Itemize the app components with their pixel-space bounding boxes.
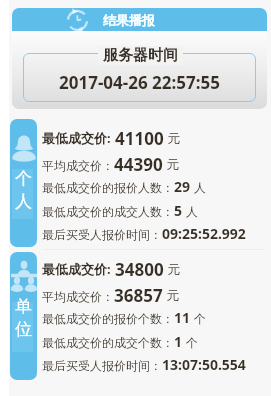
staticText: 13:07:50.554 xyxy=(162,355,246,373)
staticText: 人 xyxy=(183,203,199,219)
staticText: 元 xyxy=(163,286,180,304)
staticText: 元 xyxy=(163,155,180,173)
staticText: 最后买受人报价时间： xyxy=(42,358,162,373)
button[interactable]: 单位 xyxy=(10,252,37,380)
staticText: 单 xyxy=(15,296,32,317)
staticText: 位 xyxy=(15,319,32,340)
staticText: 1 xyxy=(174,332,183,350)
staticText: 最低成交价的成交人数： xyxy=(42,204,174,219)
staticText: 平均成交价： xyxy=(42,158,114,173)
staticText: 人 xyxy=(15,191,32,212)
button[interactable]: 结果播报 xyxy=(12,8,267,31)
staticText: 44390 xyxy=(114,153,163,173)
staticText: 最低成交价的报价人数： xyxy=(42,180,174,195)
staticText: 最低成交价: xyxy=(42,129,115,147)
staticText: 29 xyxy=(174,177,191,195)
staticText: 平均成交价： xyxy=(42,289,114,304)
staticText: 41100 xyxy=(115,127,164,147)
staticText: 09:25:52.992 xyxy=(162,224,246,242)
staticText: 34800 xyxy=(115,258,164,278)
staticText: 最后买受人报价时间： xyxy=(42,227,162,242)
staticText: 个 xyxy=(191,310,207,326)
staticText: 36857 xyxy=(114,284,163,304)
staticText: 11 xyxy=(174,308,191,326)
staticText: 人 xyxy=(191,179,207,195)
staticText: 结果播报 xyxy=(103,12,155,28)
staticText: 个 xyxy=(183,334,199,350)
staticText: 元 xyxy=(164,260,181,278)
staticText: 2017-04-26 22:57:55 xyxy=(59,71,220,94)
staticText: 服务器时间 xyxy=(103,46,178,65)
staticText: 最低成交价: xyxy=(42,260,115,278)
button[interactable]: 个人 xyxy=(10,119,37,247)
staticText: 5 xyxy=(174,201,183,219)
staticText: 最低成交价的成交个数： xyxy=(42,335,174,350)
staticText: 个 xyxy=(15,168,32,189)
staticText: 最低成交价的报价个数： xyxy=(42,311,174,326)
staticText: 元 xyxy=(164,129,181,147)
